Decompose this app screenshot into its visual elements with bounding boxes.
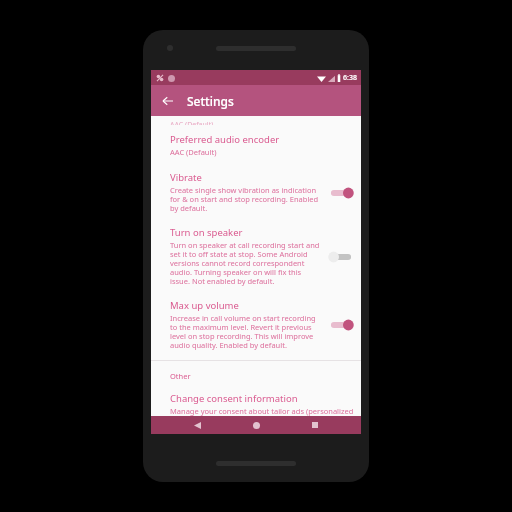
button[interactable]: On xyxy=(327,183,355,203)
button[interactable]: On xyxy=(327,315,355,335)
staticText: Change consent information xyxy=(170,392,298,405)
staticText: Create single show vibration as indicati… xyxy=(170,185,321,214)
button[interactable]: Max up volume xyxy=(151,299,361,351)
staticText: Increase in call volume on start recordi… xyxy=(170,313,321,351)
button[interactable]: Preferred audio encoder xyxy=(151,133,361,157)
button[interactable]: Turn on speaker xyxy=(151,226,361,287)
button[interactable]: Back xyxy=(184,416,210,434)
staticText: Max up volume xyxy=(170,299,239,312)
staticText: AAC (Default) xyxy=(170,147,217,157)
button[interactable]: Change consent information xyxy=(151,392,361,416)
staticText: Preferred audio encoder xyxy=(170,133,280,146)
button[interactable]: Back xyxy=(155,88,181,114)
staticText: Vibrate xyxy=(170,171,202,184)
staticText: Other xyxy=(170,371,191,381)
button[interactable]: Vibrate xyxy=(151,171,361,214)
staticText: Manage your consent about tailor ads (pe… xyxy=(170,406,355,416)
button[interactable]: Home xyxy=(243,416,269,434)
button[interactable]: Off xyxy=(327,247,355,267)
staticText: Turn on speaker xyxy=(170,226,243,239)
staticText: Settings xyxy=(187,93,234,109)
button[interactable]: Recents xyxy=(302,416,328,434)
staticText: AAC (Default) xyxy=(170,120,214,125)
staticText: 6:38 xyxy=(343,73,357,83)
staticText: Turn on speaker at call recording start … xyxy=(170,240,321,287)
